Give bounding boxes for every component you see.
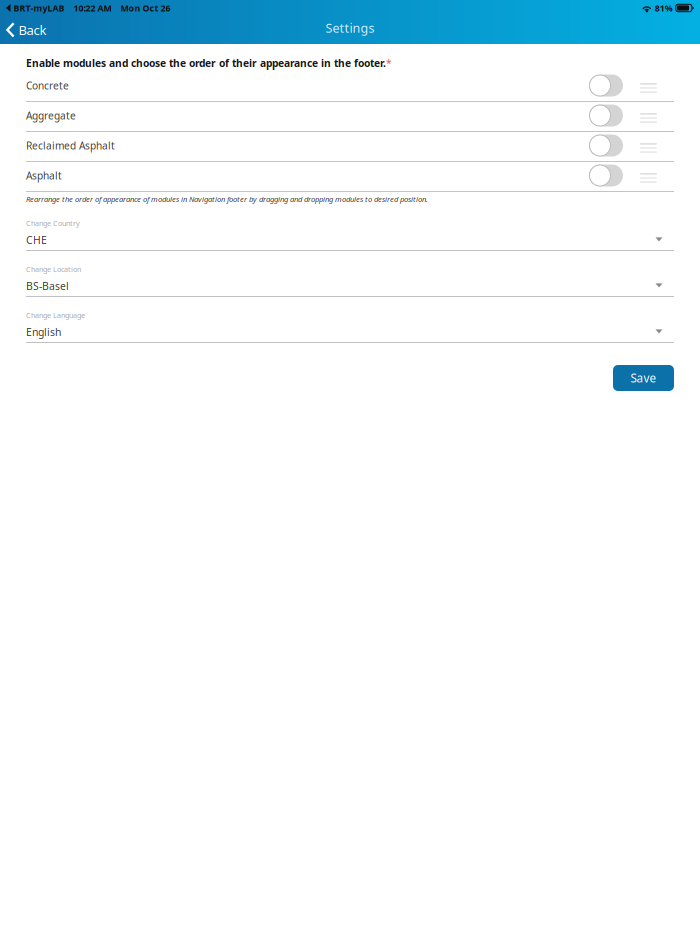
staticText: 10:22 AM: [73, 2, 111, 14]
button[interactable]: Save: [613, 365, 674, 391]
staticText: 81%: [655, 2, 673, 14]
button[interactable]: Change Country: [26, 217, 674, 251]
staticText: Change Location: [26, 264, 81, 274]
staticText: Aggregate: [26, 109, 76, 122]
button[interactable]: Enable Aggregate: [589, 104, 623, 128]
staticText: Back: [18, 21, 46, 39]
button[interactable]: Reorder Reclaimed Asphalt: [623, 134, 674, 159]
staticText: BS-Basel: [26, 279, 69, 293]
staticText: Concrete: [26, 79, 69, 92]
button[interactable]: Enable Concrete: [589, 74, 623, 98]
staticText: Save: [630, 370, 656, 386]
staticText: Change Country: [26, 218, 80, 228]
button[interactable]: Reorder Concrete: [623, 74, 674, 99]
staticText: Asphalt: [26, 169, 62, 182]
button[interactable]: Enable Asphalt: [589, 164, 623, 188]
button[interactable]: Change Location: [26, 263, 674, 297]
staticText: BRT-myLAB: [13, 2, 64, 14]
staticText: CHE: [26, 233, 47, 247]
button[interactable]: Enable Reclaimed Asphalt: [589, 134, 623, 158]
staticText: Enable modules and choose the order of t…: [26, 56, 386, 70]
staticText: Rearrange the order of appearance of mod…: [26, 194, 428, 204]
staticText: Mon Oct 26: [120, 2, 170, 14]
staticText: *: [386, 56, 392, 70]
button[interactable]: Reorder Aggregate: [623, 104, 674, 129]
button[interactable]: Back: [0, 17, 54, 43]
button[interactable]: Change Language: [26, 309, 674, 343]
staticText: Change Language: [26, 310, 85, 320]
button[interactable]: Reorder Asphalt: [623, 164, 674, 189]
staticText: Reclaimed Asphalt: [26, 139, 115, 152]
staticText: English: [26, 325, 61, 339]
staticText: Settings: [325, 19, 374, 37]
